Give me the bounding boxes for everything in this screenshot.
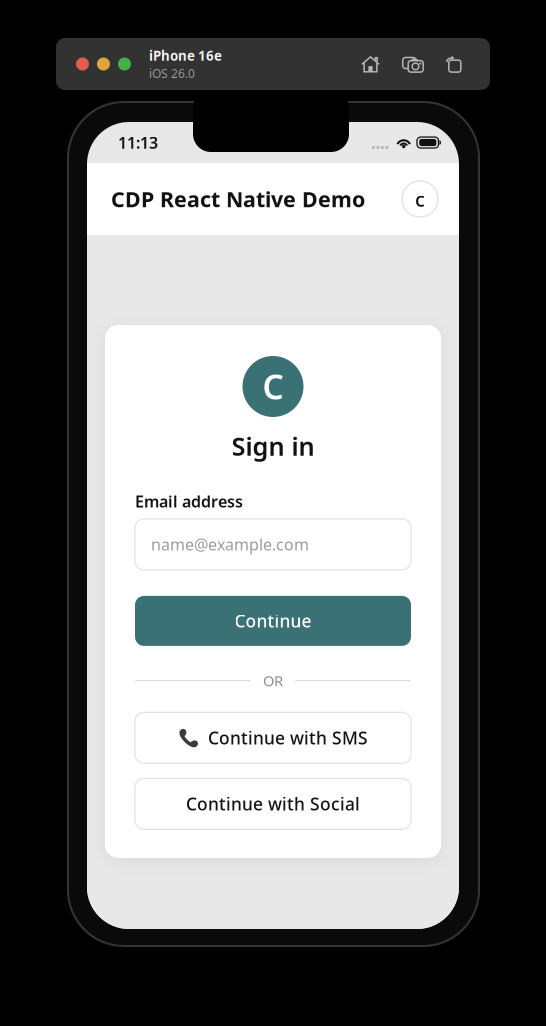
staticText: Continue with SMS <box>208 726 368 749</box>
staticText: c <box>415 186 425 212</box>
staticText: CDP React Native Demo <box>111 185 365 213</box>
staticText: Continue <box>234 609 311 632</box>
button[interactable]: Home <box>361 55 380 72</box>
staticText: Sign in <box>231 429 314 463</box>
staticText: name@example.com <box>151 534 309 555</box>
button[interactable]: Continue with Social <box>135 778 411 829</box>
staticText: OR <box>263 671 283 690</box>
button[interactable]: Continue <box>135 596 411 646</box>
staticText: C <box>262 364 283 409</box>
staticText: Continue with Social <box>186 792 360 815</box>
staticText: iPhone 16e <box>149 47 222 64</box>
button[interactable]: Rotate <box>446 55 461 72</box>
button[interactable]: Screenshot <box>402 55 424 72</box>
staticText: 11:13 <box>118 132 158 153</box>
staticText: Email address <box>135 491 243 512</box>
button[interactable]: Account <box>402 181 438 217</box>
staticText: iOS 26.0 <box>149 65 195 81</box>
button[interactable]: Continue with SMS <box>135 712 411 763</box>
